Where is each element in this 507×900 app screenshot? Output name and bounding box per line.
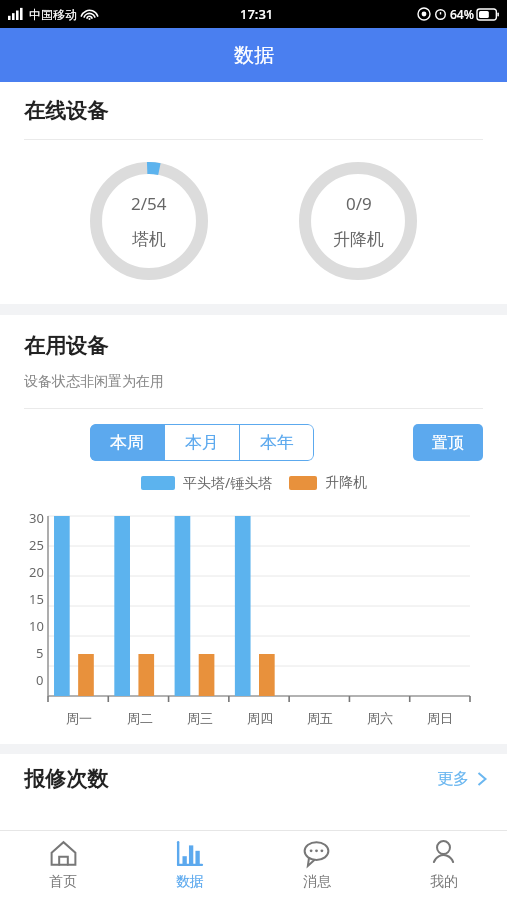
staticText: 报修次数 xyxy=(24,766,108,792)
staticText: 17:31 xyxy=(240,5,274,23)
staticText: 20 xyxy=(29,563,44,581)
staticText: 2/54 xyxy=(131,192,167,215)
staticText: 周三 xyxy=(187,710,213,726)
staticText: 15 xyxy=(29,590,44,608)
button[interactable]: 消息 xyxy=(253,831,380,900)
button[interactable]: 本年 xyxy=(240,424,314,461)
staticText: 64% xyxy=(450,6,474,22)
staticText: 0 xyxy=(36,671,44,689)
staticText: 本周 xyxy=(110,432,144,453)
staticText: 数据 xyxy=(176,873,204,891)
staticText: 消息 xyxy=(303,873,331,891)
staticText: 升降机 xyxy=(325,474,367,492)
staticText: 周四 xyxy=(247,710,273,726)
staticText: 中国移动 xyxy=(29,7,77,22)
staticText: 10 xyxy=(29,617,44,635)
staticText: 本月 xyxy=(185,432,219,453)
staticText: 在线设备 xyxy=(24,98,108,124)
button[interactable]: 首页 xyxy=(0,831,126,900)
staticText: 25 xyxy=(29,536,44,554)
staticText: 30 xyxy=(29,509,44,527)
staticText: 5 xyxy=(36,644,44,662)
staticText: 周六 xyxy=(367,710,393,726)
button[interactable]: 本周 xyxy=(90,424,164,461)
staticText: 我的 xyxy=(430,873,458,891)
button[interactable]: 更多 xyxy=(437,769,487,789)
staticText: 首页 xyxy=(49,873,77,891)
button[interactable]: 数据 xyxy=(126,831,253,900)
button[interactable]: 0/9 xyxy=(299,162,417,280)
staticText: 周五 xyxy=(307,710,333,726)
staticText: 数据 xyxy=(234,43,274,68)
staticText: 塔机 xyxy=(132,229,166,250)
button[interactable]: 我的 xyxy=(380,831,507,900)
staticText: 设备状态非闲置为在用 xyxy=(24,373,164,391)
staticText: 周一 xyxy=(66,710,92,726)
staticText: 平头塔/锤头塔 xyxy=(183,473,273,492)
staticText: 周二 xyxy=(127,710,153,726)
staticText: 本年 xyxy=(260,432,294,453)
staticText: 更多 xyxy=(437,769,469,789)
staticText: 周日 xyxy=(427,710,453,726)
staticText: 置顶 xyxy=(432,433,464,453)
staticText: 升降机 xyxy=(333,229,384,250)
button[interactable]: 本月 xyxy=(165,424,239,461)
staticText: 在用设备 xyxy=(24,333,108,359)
staticText: 0/9 xyxy=(346,192,372,215)
button[interactable]: 置顶 xyxy=(413,424,483,461)
button[interactable]: 2/54 xyxy=(90,162,208,280)
